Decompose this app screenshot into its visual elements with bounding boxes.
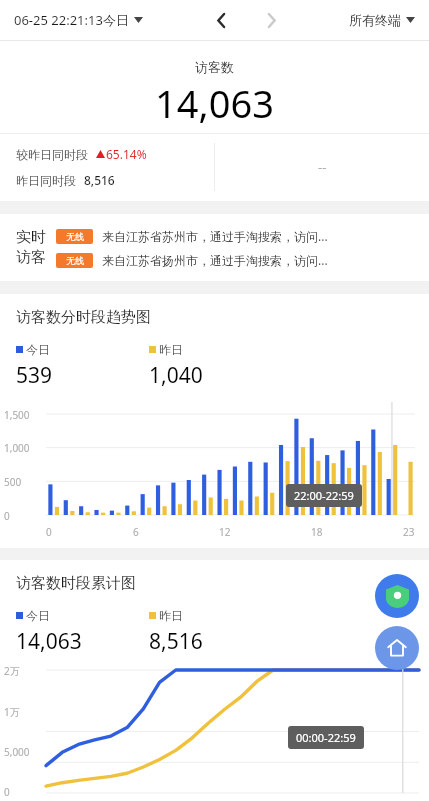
staticText: 所有终端 (349, 12, 401, 28)
button[interactable]: 实时 (0, 214, 429, 281)
button[interactable]: Next day (255, 4, 287, 36)
staticText: 14,063 (16, 627, 82, 656)
staticText: 访客数 (195, 59, 234, 75)
staticText: 0 (4, 509, 10, 523)
staticText: 500 (4, 475, 22, 489)
staticText: 1,000 (4, 441, 30, 455)
staticText: 访客数时段累计图 (16, 574, 136, 593)
staticText: 1万 (4, 705, 20, 719)
staticText: -- (318, 158, 327, 176)
button[interactable]: Security scan (375, 574, 419, 618)
staticText: 今日 (26, 342, 50, 357)
staticText: 14,063 (155, 77, 274, 129)
staticText: 23 (403, 525, 415, 539)
button[interactable]: Previous day (205, 4, 237, 36)
staticText: 昨日 (159, 608, 183, 623)
staticText: 22:00-22:59 (294, 488, 354, 503)
staticText: 无线 (66, 231, 84, 242)
staticText: 6 (133, 525, 139, 539)
staticText: 访客 (16, 248, 46, 267)
staticText: 2万 (4, 664, 20, 678)
staticText: 来自江苏省苏州市，通过手淘搜索，访问... (102, 228, 328, 244)
button[interactable]: Home (375, 626, 419, 670)
staticText: 昨日 (159, 342, 183, 357)
staticText: 8,516 (84, 172, 115, 188)
staticText: 访客数分时段趋势图 (16, 308, 151, 327)
staticText: 实时 (16, 228, 46, 247)
staticText: 来自江苏省扬州市，通过手淘搜索，访问... (102, 252, 328, 268)
staticText: 5,000 (4, 745, 30, 759)
button[interactable]: 所有终端 (349, 6, 415, 34)
staticText: 0 (46, 525, 52, 539)
staticText: 06-25 22:21:13今日 (14, 11, 129, 29)
staticText: 较昨日同时段 (16, 147, 88, 162)
staticText: 1,500 (4, 408, 30, 422)
staticText: 65.14% (106, 146, 147, 162)
staticText: 无线 (66, 255, 84, 266)
staticText: 8,516 (149, 627, 203, 656)
staticText: 昨日同时段 (16, 173, 76, 188)
staticText: 0 (4, 785, 10, 799)
staticText: 18 (311, 525, 323, 539)
button[interactable]: 06-25 22:21:13今日 (14, 5, 143, 35)
staticText: 1,040 (149, 361, 203, 390)
staticText: 12 (219, 525, 231, 539)
staticText: 今日 (26, 608, 50, 623)
staticText: 00:00-22:59 (296, 730, 356, 745)
staticText: 539 (16, 361, 53, 390)
